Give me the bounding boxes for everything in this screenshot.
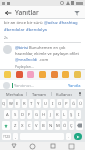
staticText: I	[52, 101, 54, 107]
staticText: U	[44, 101, 48, 107]
staticText: @nnallnoldi	[15, 57, 38, 62]
button[interactable]: R	[22, 99, 27, 108]
staticText: Y	[37, 101, 40, 107]
staticText: X	[21, 123, 24, 129]
staticText: Q	[2, 101, 6, 107]
button[interactable]: Back	[3, 8, 12, 17]
staticText: T	[30, 101, 33, 107]
staticText: F	[28, 112, 31, 118]
button[interactable]: Backspace	[76, 121, 83, 130]
staticText: ,	[15, 134, 17, 140]
button[interactable]: Keyboard	[66, 142, 77, 150]
staticText: #bendolar	[4, 27, 25, 33]
staticText: Yanıtla	[68, 83, 81, 88]
staticText: Ğ	[72, 101, 76, 107]
staticText: Yanıtlar	[15, 8, 39, 17]
button[interactable]: A	[4, 110, 10, 119]
staticText: hazırdılar, ekimle ve paylaşın ofilet	[15, 51, 79, 56]
staticText: Ü	[79, 101, 83, 107]
staticText: .com	[39, 57, 49, 62]
staticText: @birisi	[15, 45, 28, 50]
staticText: W	[9, 101, 13, 107]
button[interactable]: W	[8, 99, 13, 108]
staticText: Ö	[63, 123, 67, 129]
button[interactable]: Emoji	[74, 71, 81, 78]
button[interactable]: P	[64, 99, 69, 108]
staticText: O	[58, 101, 62, 107]
staticText: @adsız	[44, 20, 58, 26]
button[interactable]: Ş	[69, 110, 74, 119]
staticText: Tamam	[32, 92, 46, 97]
staticText: N	[49, 123, 53, 129]
staticText: M	[56, 123, 60, 129]
button[interactable]: Shift	[2, 121, 10, 130]
button[interactable]: ,	[13, 133, 18, 140]
button[interactable]: Tamam	[27, 90, 51, 98]
button[interactable]: Merhaba	[2, 90, 26, 98]
button[interactable]: S	[12, 110, 18, 119]
button[interactable]: Voice input	[76, 90, 83, 98]
button[interactable]: O	[57, 99, 62, 108]
button[interactable]: Yanıtla	[67, 82, 82, 89]
button[interactable]: Ü	[78, 99, 83, 108]
staticText: V	[35, 123, 38, 129]
button[interactable]: Send	[74, 133, 82, 140]
staticText: #bendolya	[26, 27, 47, 33]
button[interactable]: Filter	[72, 8, 82, 18]
staticText: C	[28, 123, 31, 129]
button[interactable]: Q	[2, 99, 6, 108]
staticText: D	[21, 112, 25, 118]
button[interactable]: G	[34, 110, 39, 119]
button[interactable]: Z	[12, 121, 18, 130]
button[interactable]: V	[34, 121, 39, 130]
button[interactable]: M	[55, 121, 60, 130]
staticText: G	[35, 112, 39, 118]
button[interactable]: Y	[36, 99, 41, 108]
staticText: bir an önce bir sürü	[4, 20, 43, 26]
button[interactable]: L	[62, 110, 67, 119]
button[interactable]: Emoji	[16, 71, 23, 78]
button[interactable]: Ç	[69, 121, 74, 130]
staticText: .	[68, 134, 70, 140]
button[interactable]: .	[66, 133, 71, 140]
button[interactable]: J	[48, 110, 53, 119]
button[interactable]: Kullanıcı	[52, 90, 76, 98]
button[interactable]: Ö	[62, 121, 67, 130]
button[interactable]: Emoji	[62, 71, 69, 78]
staticText: R	[23, 101, 26, 107]
staticText: I	[78, 112, 80, 118]
button[interactable]: Emoji	[51, 71, 58, 78]
button[interactable]: U	[43, 99, 48, 108]
button[interactable]: C	[27, 121, 32, 130]
button[interactable]: ?123	[2, 133, 11, 140]
staticText: E	[16, 101, 19, 107]
button[interactable]: Ğ	[71, 99, 76, 108]
button[interactable]: D	[20, 110, 25, 119]
button[interactable]: I	[50, 99, 55, 108]
button[interactable]: Emoji	[27, 71, 34, 78]
button[interactable]: K	[55, 110, 60, 119]
button[interactable]: H	[41, 110, 46, 119]
staticText: Bunuhemen en çok	[29, 45, 66, 50]
button[interactable]: I	[76, 110, 81, 119]
staticText: A	[6, 112, 9, 118]
button[interactable]: Home	[27, 142, 38, 150]
button[interactable]: Emoji	[4, 71, 11, 78]
button[interactable]: X	[20, 121, 25, 130]
staticText: K	[56, 112, 59, 118]
button[interactable]: Back	[8, 142, 19, 150]
button[interactable]: N	[48, 121, 53, 130]
staticText: Z	[14, 123, 17, 129]
button[interactable]: T	[29, 99, 34, 108]
button[interactable]: E	[15, 99, 20, 108]
staticText: P	[65, 101, 68, 107]
button[interactable]: Emoji	[39, 71, 46, 78]
button[interactable]: F	[27, 110, 32, 119]
button[interactable]: Recents	[47, 142, 58, 150]
staticText: Kullanıcı	[56, 92, 72, 97]
staticText: Ç	[70, 123, 73, 129]
staticText: Merhaba	[6, 92, 23, 97]
button[interactable]: B	[41, 121, 46, 130]
staticText: Yanıtınızı...	[14, 83, 34, 88]
